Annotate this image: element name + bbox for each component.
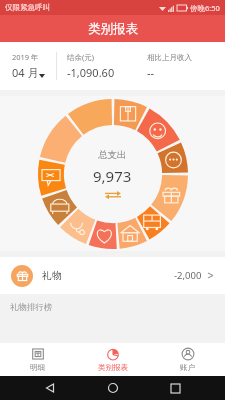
staticText: 明细 [30,363,45,372]
staticText: 类别报表 [88,21,138,37]
staticText: 账户 [180,363,195,372]
button[interactable]: 礼物 [0,257,225,294]
button[interactable]: Home [100,376,126,400]
staticText: -1,090.60 [67,65,115,80]
button[interactable]: 账户 [150,343,225,376]
staticText: -- [147,65,155,80]
staticText: 仅限紧急呼叫 [5,3,50,12]
button[interactable]: 类别报表 [75,343,150,376]
staticText: 04 月 [12,65,39,80]
button[interactable]: Back [37,376,63,400]
staticText: -2,000 [174,269,202,282]
staticText: 2019 年 [12,52,39,62]
staticText: 总支出 [98,149,127,161]
staticText: 礼物排行榜 [10,302,53,313]
button[interactable]: Recents [162,376,188,400]
staticText: 类别报表 [98,363,128,372]
staticText: 礼物 [42,269,62,282]
staticText: 相比上月收入 [147,53,192,62]
button[interactable]: 明细 [0,343,75,376]
staticText: 傍晚6:50 [190,3,220,13]
staticText: 9,973 [93,166,132,186]
button[interactable]: 2019 年 [12,52,56,80]
staticText: 结余(元) [67,52,94,62]
